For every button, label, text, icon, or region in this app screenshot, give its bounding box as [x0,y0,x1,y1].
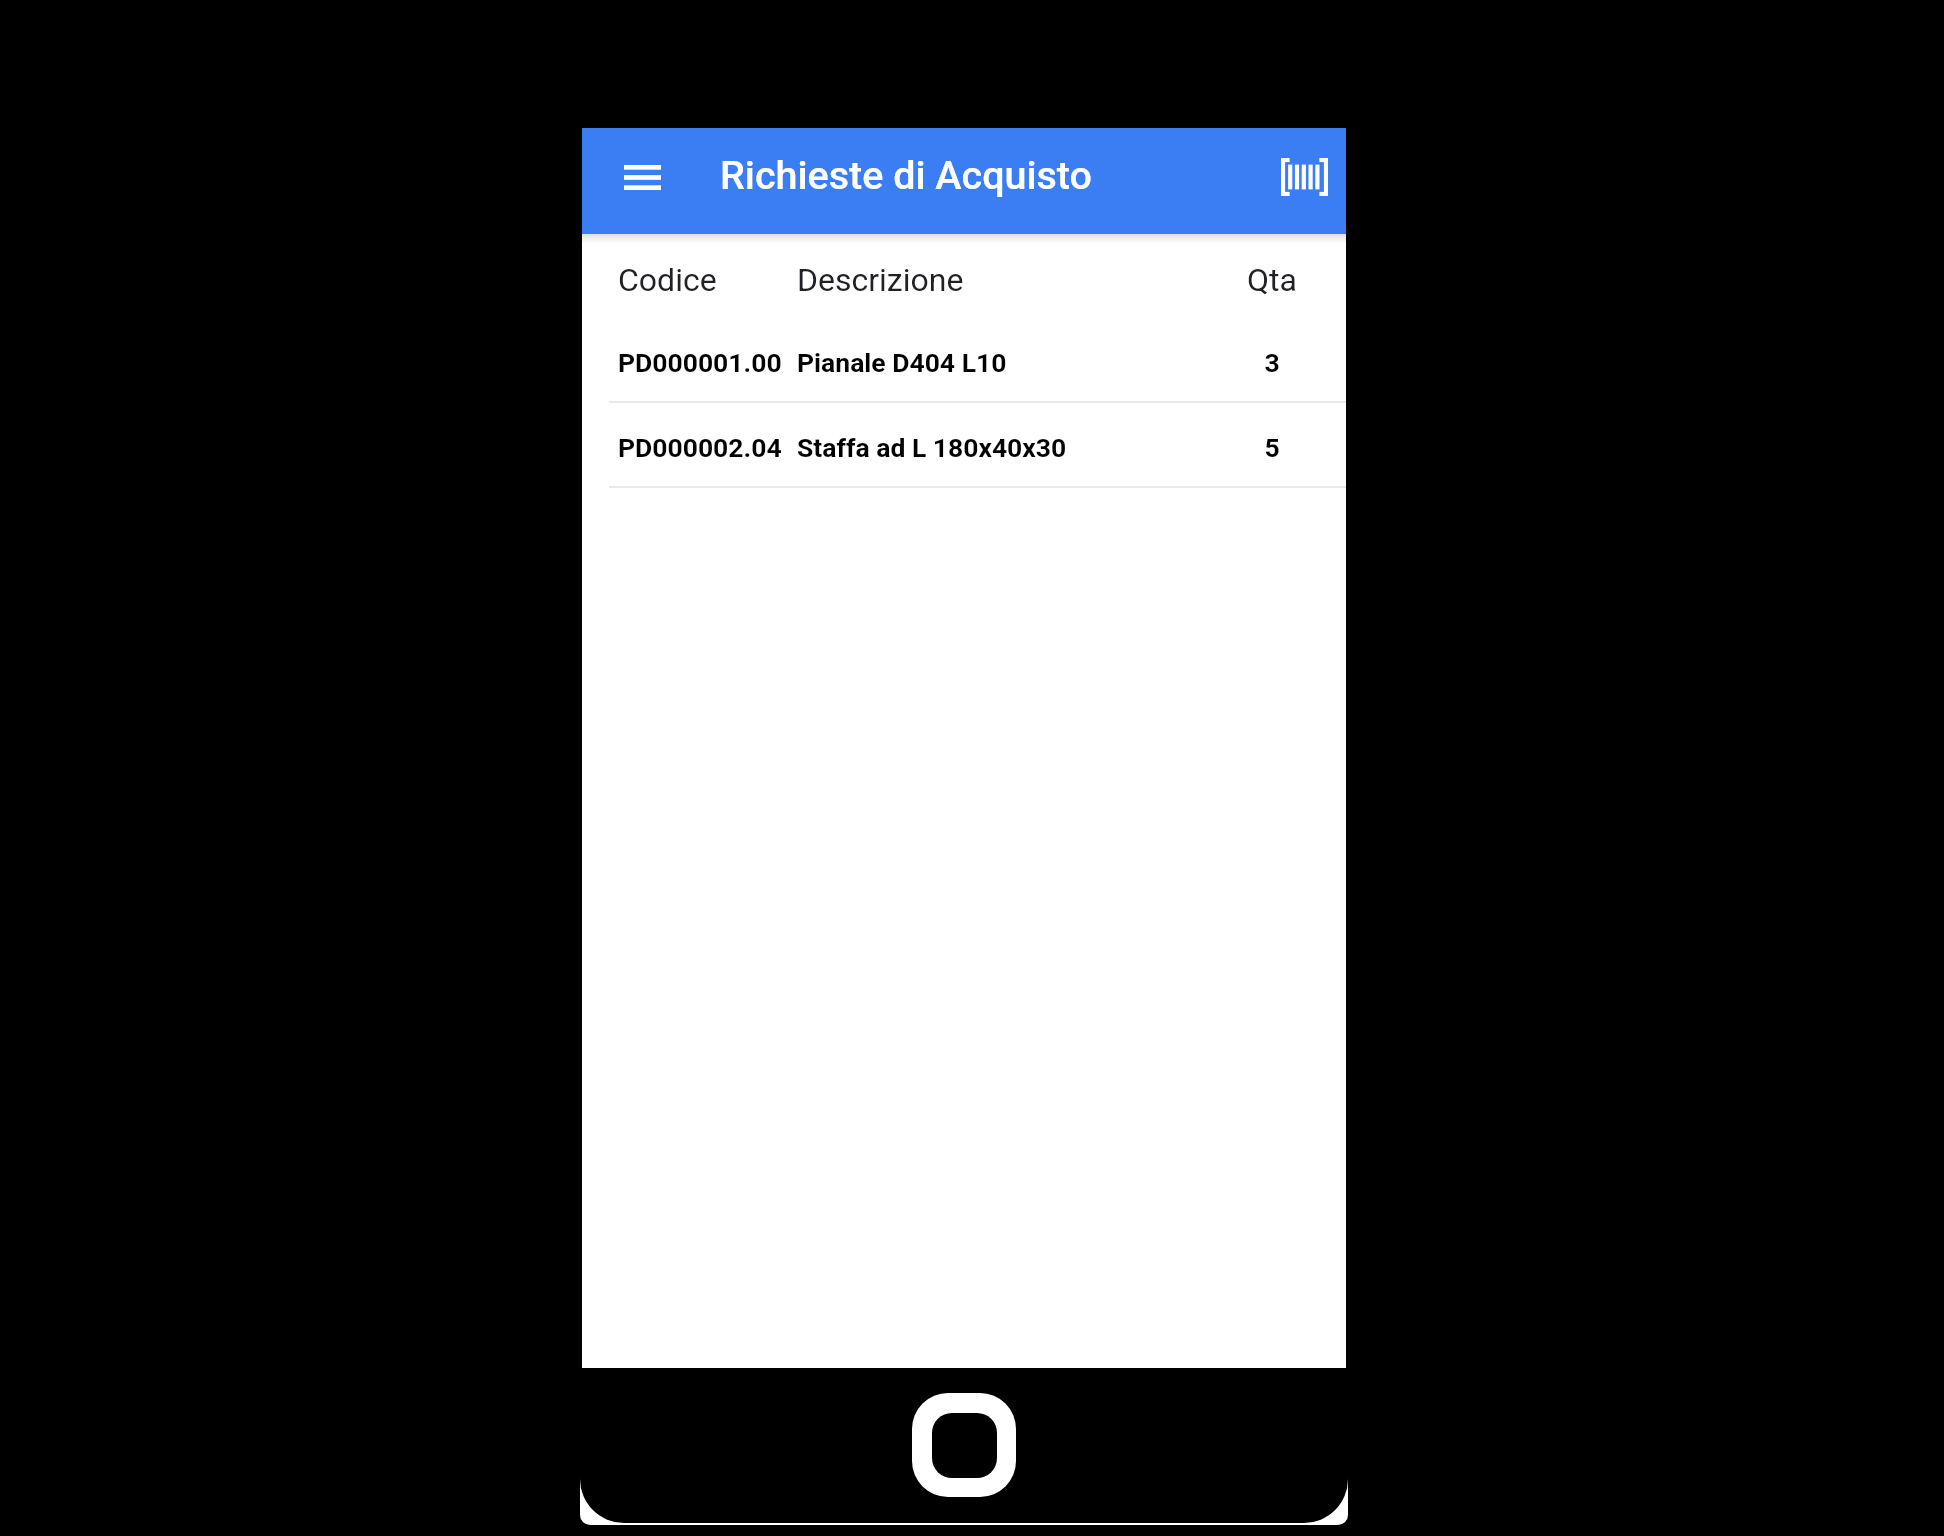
button[interactable]: PD000001.00 [582,318,1346,401]
button[interactable]: Home [912,1393,1016,1497]
staticText: PD000002.04 [618,432,782,463]
button[interactable]: Scan barcode [1272,145,1337,209]
staticText: Staffa ad L 180x40x30 [797,432,1067,463]
staticText: 5 [1192,432,1352,463]
staticText: Richieste di Acquisto [720,152,1092,198]
staticText: 3 [1192,347,1352,378]
staticText: Codice [618,261,717,299]
button[interactable]: Open navigation menu [610,145,675,209]
button[interactable]: PD000002.04 [582,403,1346,486]
staticText: Qta [1192,261,1352,299]
staticText: Descrizione [797,261,964,299]
staticText: Pianale D404 L10 [797,347,1007,378]
staticText: PD000001.00 [618,347,782,378]
